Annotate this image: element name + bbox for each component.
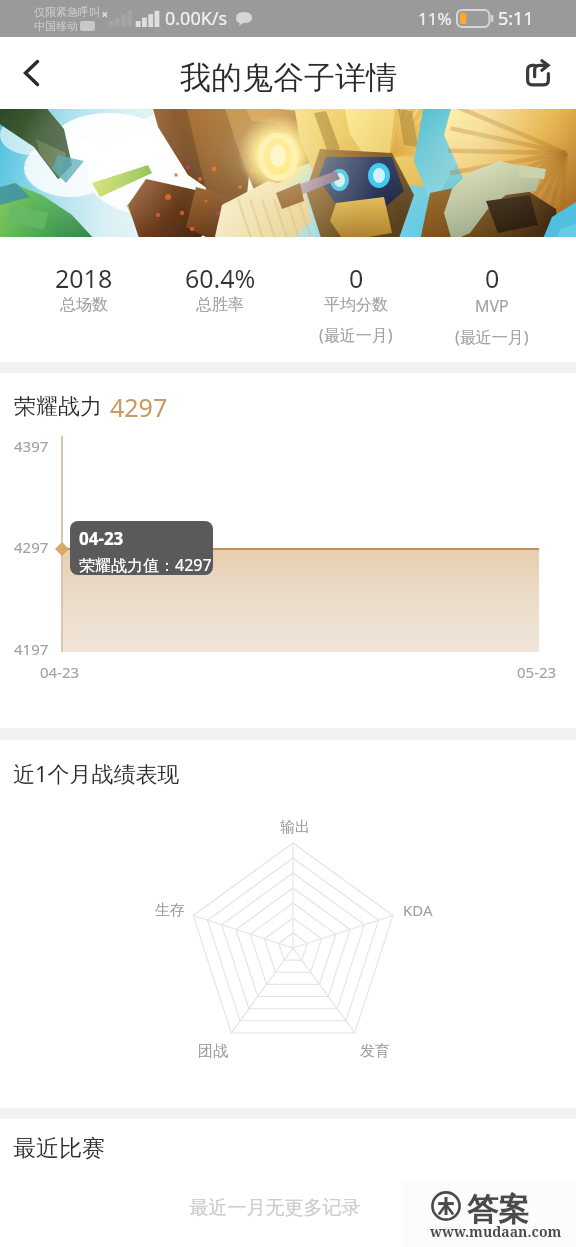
staticText: 4197: [14, 639, 49, 659]
staticText: MVP: [475, 295, 509, 317]
staticText: 我的鬼谷子详情: [180, 58, 397, 97]
staticText: (最近一月): [455, 326, 529, 348]
staticText: 05-23: [517, 662, 557, 682]
staticText: 荣耀战力: [14, 393, 102, 421]
staticText: 发育: [360, 1042, 390, 1061]
staticText: 平均分数: [324, 295, 388, 315]
staticText: 0.00K/s: [165, 6, 228, 31]
staticText: 0: [485, 261, 500, 295]
staticText: 近1个月战绩表现: [13, 758, 180, 788]
staticText: 答案: [467, 1190, 529, 1229]
staticText: 荣耀战力值：4297: [79, 554, 212, 575]
button[interactable]: 0: [288, 237, 424, 362]
staticText: KDA: [403, 900, 433, 920]
staticText: 总胜率: [196, 295, 244, 315]
staticText: www.mudaan.com: [430, 1222, 562, 1241]
staticText: 生存: [155, 901, 185, 920]
staticText: 总场数: [60, 295, 108, 315]
staticText: 0: [349, 261, 364, 295]
staticText: 11%: [418, 7, 452, 30]
staticText: 04-23: [79, 527, 124, 550]
staticText: 最近一月无更多记录: [0, 1196, 563, 1220]
button[interactable]: Share: [499, 37, 576, 109]
staticText: 4297: [14, 537, 49, 557]
button[interactable]: Back: [0, 37, 62, 109]
staticText: 04-23: [40, 662, 80, 682]
staticText: 4297: [110, 390, 168, 424]
staticText: 团战: [198, 1042, 228, 1061]
staticText: 仅限紧急呼叫: [34, 5, 100, 19]
staticText: 中国移动: [34, 19, 78, 33]
staticText: (最近一月): [319, 324, 393, 346]
staticText: 输出: [280, 818, 310, 837]
staticText: 60.4%: [185, 261, 256, 295]
staticText: 4397: [14, 436, 49, 456]
staticText: 2018: [55, 261, 113, 295]
button[interactable]: 0: [424, 237, 560, 362]
button[interactable]: 60.4%: [152, 237, 288, 362]
staticText: 最近比赛: [13, 1134, 105, 1163]
button[interactable]: 2018: [15, 237, 152, 362]
staticText: 5:11: [498, 6, 534, 31]
